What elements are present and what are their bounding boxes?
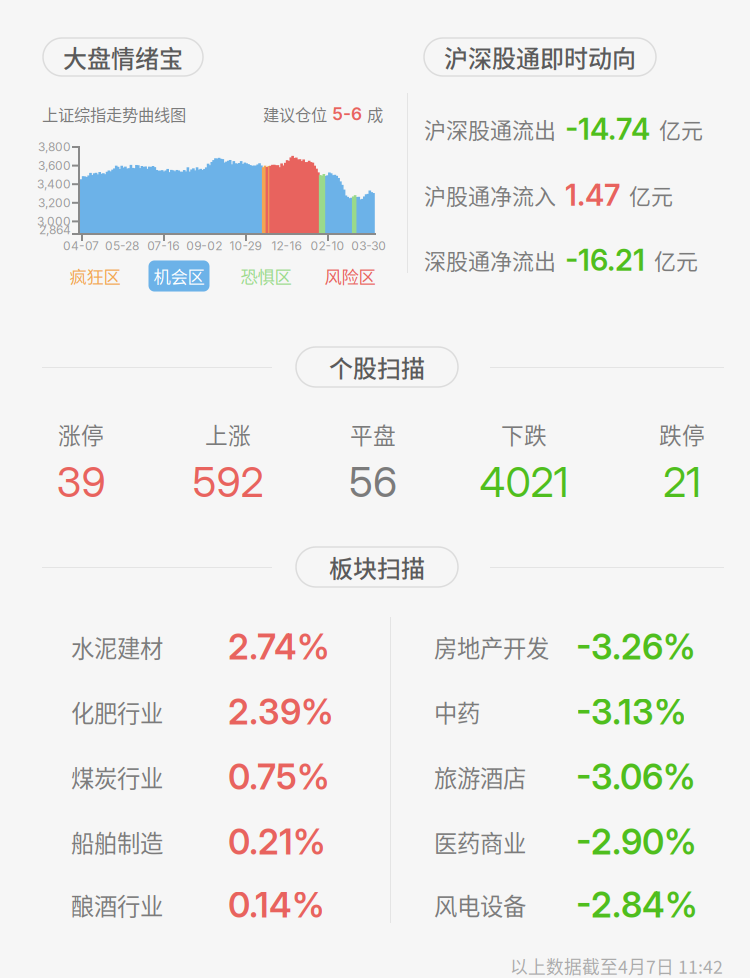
staticText: 04-07 [63, 239, 99, 253]
staticText: 中药 [434, 695, 480, 729]
staticText: 深股通净流出 [424, 244, 556, 276]
staticText: 3,800 [38, 140, 71, 154]
staticText: 平盘 [350, 418, 396, 450]
staticText: 建议仓位 [263, 102, 327, 126]
staticText: 成 [367, 102, 383, 126]
staticText: 0.14% [228, 884, 325, 926]
staticText: 亿元 [629, 179, 673, 211]
staticText: 4021 [479, 457, 568, 507]
staticText: 39 [56, 457, 105, 507]
staticText: 沪股通净流入 [424, 179, 556, 211]
staticText: 上证综指走势曲线图 [42, 102, 186, 126]
staticText: 机会区 [153, 263, 204, 289]
button[interactable]: 机会区 [148, 260, 209, 292]
staticText: 上涨 [205, 418, 251, 450]
staticText: 酿酒行业 [71, 888, 163, 922]
staticText: 56 [349, 457, 397, 507]
staticText: 跌停 [659, 418, 705, 450]
staticText: 板块扫描 [329, 550, 425, 584]
staticText: 2,864 [39, 223, 71, 237]
staticText: 沪深股通流出 [424, 113, 556, 145]
staticText: -14.74 [565, 111, 650, 147]
staticText: 医药商业 [434, 825, 526, 859]
staticText: 沪深股通即时动向 [444, 40, 636, 74]
staticText: 煤炭行业 [71, 760, 163, 794]
staticText: 02-10 [311, 239, 345, 253]
staticText: 以上数据截至4月7日 11:42 [510, 953, 723, 978]
staticText: 旅游酒店 [434, 760, 526, 794]
staticText: -3.26% [576, 626, 696, 668]
staticText: 0.75% [228, 756, 330, 798]
staticText: -3.13% [576, 691, 687, 733]
staticText: 12-16 [271, 239, 301, 253]
button[interactable]: 风险区 [319, 260, 380, 292]
button[interactable]: 沪深股通即时动向 [424, 38, 656, 76]
staticText: 3,600 [38, 158, 71, 173]
staticText: -2.84% [576, 884, 698, 926]
staticText: 风险区 [324, 263, 375, 289]
staticText: 水泥建材 [71, 630, 163, 664]
staticText: 05-28 [105, 239, 139, 253]
staticText: -2.90% [576, 821, 697, 863]
staticText: 10-29 [229, 239, 261, 253]
staticText: 3,000 [37, 214, 71, 229]
staticText: 个股扫描 [329, 350, 425, 384]
staticText: 涨停 [58, 418, 104, 450]
staticText: 2.74% [228, 626, 330, 668]
button[interactable]: 大盘情绪宝 [43, 38, 203, 76]
staticText: 亿元 [659, 113, 703, 145]
staticText: 21 [663, 457, 701, 507]
staticText: 0.21% [228, 821, 326, 863]
staticText: -3.06% [576, 756, 696, 798]
button[interactable]: 恐惧区 [235, 260, 296, 292]
staticText: 2.39% [228, 691, 334, 733]
staticText: 房地产开发 [434, 630, 549, 664]
staticText: 592 [192, 457, 263, 507]
staticText: 大盘情绪宝 [63, 40, 183, 74]
staticText: -16.21 [565, 242, 645, 278]
staticText: 化肥行业 [71, 695, 163, 729]
staticText: 亿元 [654, 244, 698, 276]
staticText: 3,200 [38, 195, 71, 210]
staticText: 1.47 [565, 177, 620, 213]
button[interactable]: 疯狂区 [64, 260, 125, 292]
staticText: 09-02 [186, 239, 222, 253]
staticText: 风电设备 [434, 888, 526, 922]
staticText: 3,400 [37, 177, 71, 191]
staticText: 03-30 [351, 239, 386, 253]
staticText: 下跌 [501, 418, 547, 450]
button[interactable]: 板块扫描 [296, 547, 458, 587]
staticText: 恐惧区 [240, 263, 291, 289]
staticText: 疯狂区 [69, 263, 120, 289]
button[interactable]: 个股扫描 [296, 347, 458, 387]
staticText: 船舶制造 [71, 825, 163, 859]
staticText: 5-6 [332, 103, 362, 124]
staticText: 07-16 [147, 239, 179, 253]
